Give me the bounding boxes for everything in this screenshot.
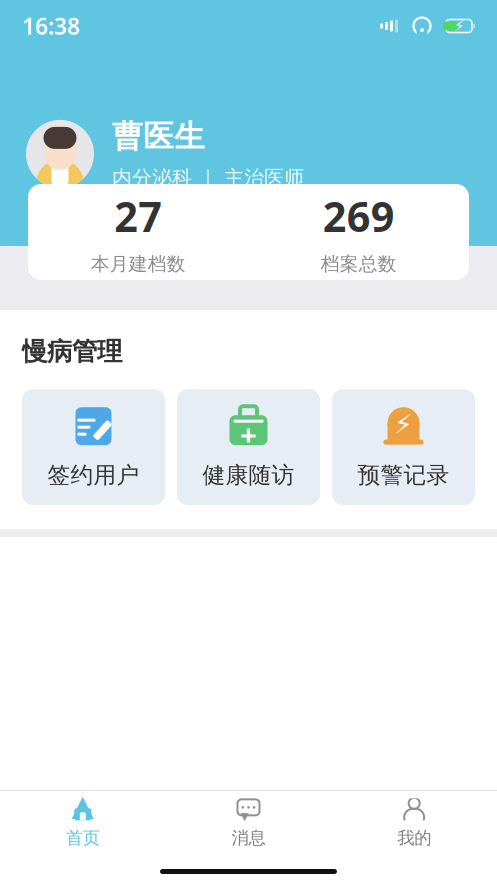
staticText: + bbox=[240, 415, 257, 454]
staticText: 首页 bbox=[66, 827, 100, 849]
staticText: 内分泌科 ｜ 主治医师 bbox=[112, 165, 304, 190]
staticText: 16:38 bbox=[22, 11, 80, 41]
staticText: 消息 bbox=[231, 827, 265, 849]
staticText: ⚡︎ bbox=[454, 18, 464, 34]
button[interactable]: + bbox=[177, 389, 320, 505]
button[interactable]: ▼ bbox=[166, 797, 331, 849]
staticText: 27 bbox=[114, 189, 162, 243]
staticText: ▲ bbox=[71, 789, 94, 822]
staticText: 本月建档数 bbox=[91, 252, 186, 275]
button[interactable]: 签约用户 bbox=[22, 389, 165, 505]
staticText: 269 bbox=[323, 189, 395, 243]
staticText: ▼ bbox=[240, 810, 248, 822]
staticText: 预警记录 bbox=[357, 461, 449, 489]
staticText: 我的 bbox=[397, 827, 431, 849]
button[interactable]: ⚡︎ bbox=[332, 389, 475, 505]
staticText: 健康随访 bbox=[202, 461, 294, 489]
button[interactable]: ▲ bbox=[0, 797, 166, 849]
staticText: ⚡︎ bbox=[394, 409, 413, 439]
staticText: 曹医生 bbox=[112, 118, 205, 155]
staticText: 档案总数 bbox=[321, 252, 397, 275]
staticText: 慢病管理 bbox=[22, 336, 122, 367]
button[interactable]: 我的 bbox=[331, 797, 497, 849]
staticText: 签约用户 bbox=[47, 461, 139, 489]
